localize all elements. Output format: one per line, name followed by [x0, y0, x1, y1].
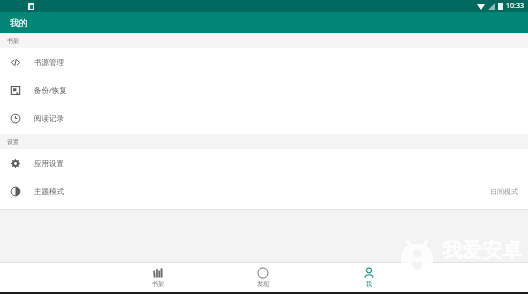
button[interactable]: 阅读记录 — [0, 104, 528, 132]
staticText: 书源管理 — [34, 58, 64, 67]
staticText: 阅读记录 — [34, 114, 64, 123]
button[interactable]: 主题模式 — [0, 177, 528, 205]
button[interactable]: 书架 — [105, 263, 210, 292]
staticText: 我的 — [10, 17, 28, 28]
button[interactable]: 应用设置 — [0, 149, 528, 177]
button[interactable]: 我 — [316, 263, 422, 292]
staticText: 备份/恢复 — [34, 85, 67, 95]
button[interactable]: 发现 — [210, 263, 316, 292]
button[interactable]: 书源管理 — [0, 48, 528, 76]
staticText: 10:33 — [506, 1, 524, 11]
staticText: 应用设置 — [34, 159, 64, 168]
staticText: 日间模式 — [490, 187, 518, 196]
staticText: 主题模式 — [34, 187, 64, 196]
staticText: 发现 — [257, 280, 269, 288]
staticText: 我 — [366, 280, 372, 288]
staticText: 设置 — [7, 138, 19, 146]
staticText: 书架 — [152, 280, 164, 288]
button[interactable]: 备份/恢复 — [0, 76, 528, 104]
staticText: 我爱安卓 — [442, 238, 522, 263]
staticText: 书架 — [7, 37, 19, 45]
